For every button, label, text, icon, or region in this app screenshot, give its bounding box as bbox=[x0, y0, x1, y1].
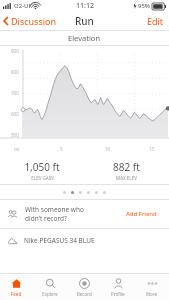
button[interactable]: Add Friend bbox=[121, 207, 162, 221]
staticText: 800 bbox=[11, 69, 19, 75]
button[interactable]: Profile bbox=[101, 274, 135, 300]
staticText: More bbox=[146, 291, 158, 297]
staticText: 700 bbox=[11, 90, 19, 96]
staticText: O2-UK bbox=[14, 2, 33, 10]
staticText: 95% bbox=[138, 2, 150, 10]
staticText: 900 bbox=[11, 48, 19, 54]
staticText: Elevation bbox=[68, 33, 101, 43]
staticText: 1,050 ft bbox=[24, 160, 60, 174]
staticText: Explore bbox=[42, 291, 58, 297]
staticText: Record bbox=[77, 291, 92, 297]
staticText: 600 bbox=[11, 111, 19, 117]
staticText: 11:12 bbox=[76, 1, 94, 11]
staticText: didn't record? bbox=[25, 214, 67, 223]
staticText: mi bbox=[14, 146, 20, 152]
button[interactable]: With someone who bbox=[0, 200, 169, 228]
button[interactable]: Nike PEGASUS 34 BLUE bbox=[0, 229, 169, 251]
staticText: Run bbox=[75, 14, 94, 28]
staticText: ELEV GAIN bbox=[31, 175, 54, 181]
staticText: With someone who bbox=[25, 205, 84, 214]
staticText: Feed bbox=[11, 291, 22, 297]
button[interactable]: Record bbox=[67, 274, 101, 300]
button[interactable]: Feed bbox=[0, 274, 33, 300]
staticText: Discussion bbox=[11, 15, 57, 27]
staticText: MAX ELEV bbox=[116, 175, 137, 181]
button[interactable]: Edit bbox=[142, 12, 169, 30]
button[interactable]: Discussion bbox=[0, 12, 61, 30]
staticText: Add Friend bbox=[126, 210, 157, 218]
staticText: 10 bbox=[105, 146, 111, 152]
staticText: Profile bbox=[111, 291, 125, 297]
button[interactable]: More bbox=[135, 274, 169, 300]
staticText: Edit bbox=[147, 15, 164, 27]
staticText: 882 ft bbox=[113, 160, 140, 174]
staticText: Nike PEGASUS 34 BLUE bbox=[24, 236, 95, 245]
staticText: 15 bbox=[149, 146, 155, 152]
staticText: 500 bbox=[11, 132, 19, 138]
button[interactable]: Explore bbox=[33, 274, 67, 300]
staticText: 5 bbox=[60, 146, 63, 152]
